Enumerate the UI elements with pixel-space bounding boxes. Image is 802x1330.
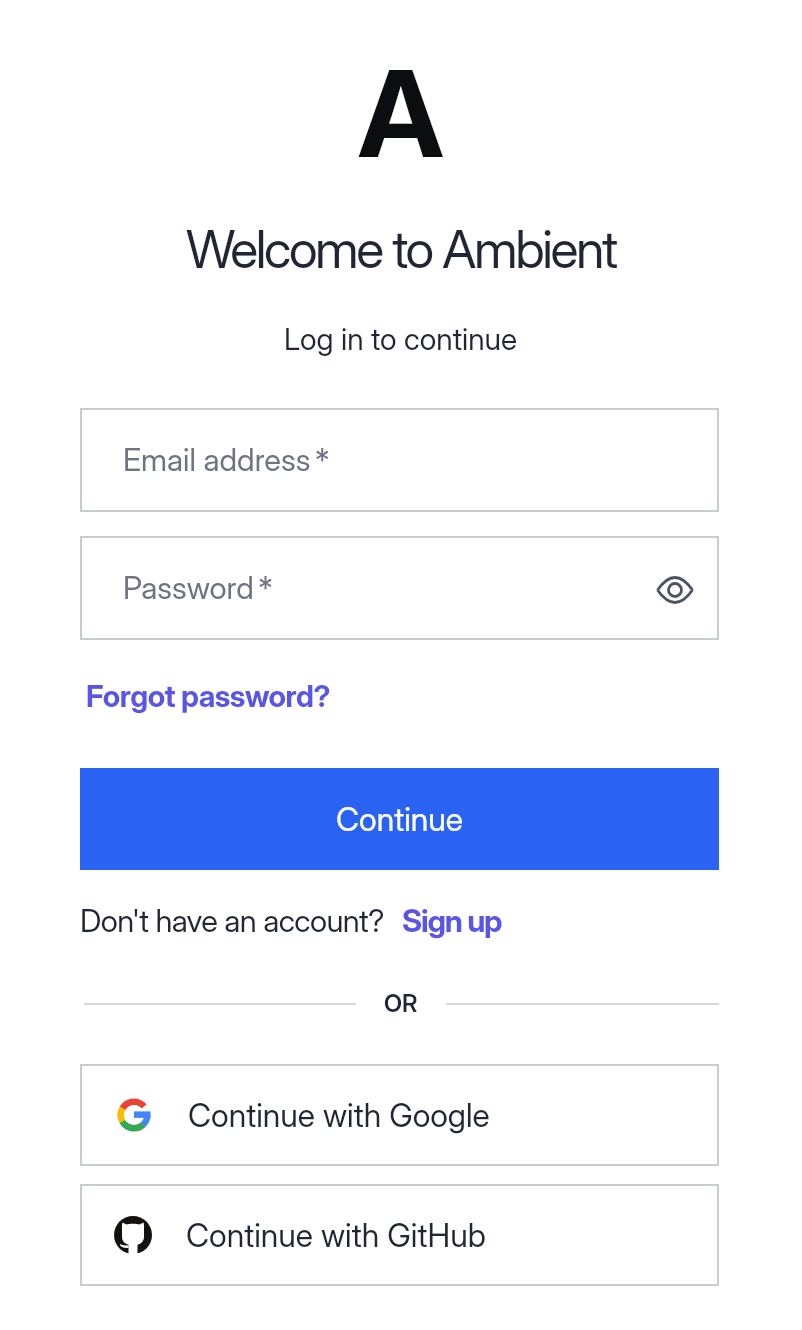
button[interactable] (655, 570, 695, 610)
button[interactable]: Continue (80, 768, 719, 870)
button[interactable]: Sign up (402, 902, 502, 940)
button[interactable]: Continue with GitHub (80, 1184, 719, 1286)
staticText: A (358, 41, 444, 186)
button[interactable]: Email address * (80, 408, 719, 512)
button[interactable]: Continue with Google (80, 1064, 719, 1166)
staticText: Email address * (123, 441, 330, 479)
staticText: Log in to continue (284, 321, 518, 357)
staticText: Welcome to Ambient (186, 218, 616, 281)
staticText: Continue with Google (188, 1096, 490, 1135)
button[interactable]: Forgot password? (86, 678, 331, 714)
staticText: Continue with GitHub (186, 1216, 486, 1255)
staticText: Don't have an account? (80, 902, 384, 940)
staticText: OR (384, 989, 418, 1018)
staticText: Continue (336, 800, 463, 839)
staticText: Password * (123, 569, 273, 607)
button[interactable]: Password * (80, 536, 719, 640)
